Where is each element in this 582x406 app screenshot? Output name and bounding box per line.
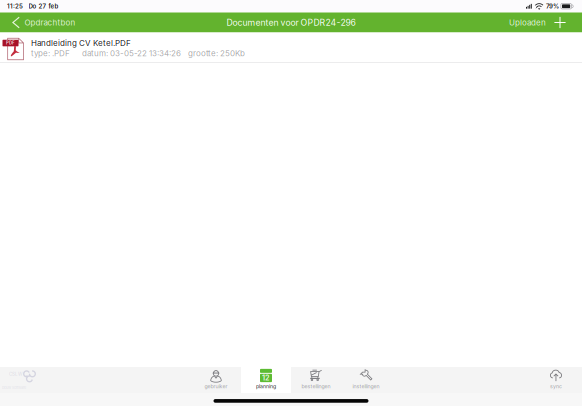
staticText: PDF — [6, 40, 15, 46]
button[interactable]: Document toevoegen — [548, 12, 572, 32]
button[interactable]: sync — [531, 367, 581, 393]
staticText: bestellingen — [301, 383, 330, 389]
staticText: datum: 03-05-22 13:34:26 — [82, 48, 181, 58]
button[interactable]: bestellingen — [291, 367, 341, 393]
staticText: instellingen — [352, 383, 379, 389]
staticText: Do 27 feb — [28, 2, 58, 10]
staticText: Documenten voor OPDR24-296 — [226, 17, 355, 28]
staticText: type: .PDF — [31, 48, 70, 58]
staticText: Opdrachtbon — [24, 18, 75, 27]
button[interactable]: Opdrachtbon — [0, 12, 84, 32]
button[interactable]: PDF — [0, 32, 582, 63]
staticText: gebruiker — [204, 383, 227, 389]
staticText: sync — [550, 383, 562, 389]
staticText: 11:25 — [7, 2, 23, 10]
staticText: bouw software — [2, 385, 26, 390]
staticText: CSLW — [9, 371, 22, 377]
staticText: grootte: 250Kb — [188, 48, 245, 58]
button[interactable]: Uploaden — [503, 12, 548, 32]
button[interactable]: gebruiker — [191, 367, 241, 393]
button[interactable]: instellingen — [341, 367, 391, 393]
staticText: 79% — [546, 2, 559, 10]
staticText: planning — [256, 383, 276, 389]
staticText: Handleiding CV Ketel.PDF — [31, 38, 131, 48]
button[interactable]: 12 — [241, 367, 291, 393]
staticText: Uploaden — [509, 18, 546, 27]
staticText: 12 — [262, 374, 270, 382]
